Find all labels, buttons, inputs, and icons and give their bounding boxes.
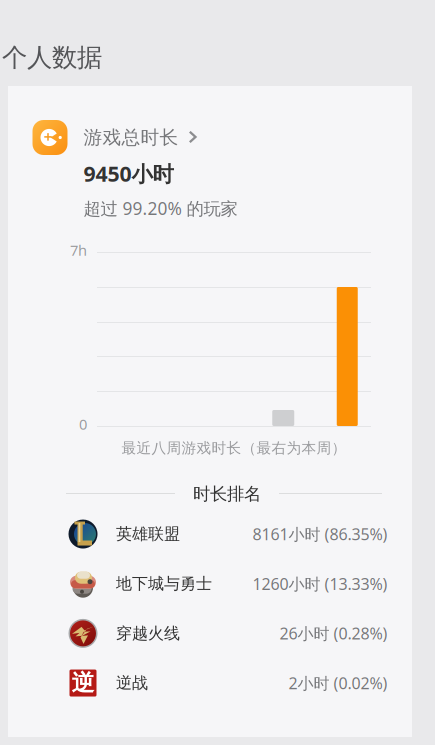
staticText: 英雄联盟 — [116, 524, 180, 544]
staticText: 游戏总时长 — [83, 126, 178, 149]
staticText: 逆 — [71, 669, 94, 697]
staticText: 穿越火线 — [116, 623, 180, 643]
staticText: 个人数据 — [2, 42, 102, 73]
staticText: 地下城与勇士 — [116, 574, 212, 594]
staticText: 9450小时 — [83, 159, 173, 188]
staticText: 2小时 (0.02%) — [288, 672, 387, 694]
staticText: 1260小时 (13.33%) — [252, 573, 387, 594]
staticText: 8161小时 (86.35%) — [252, 523, 387, 545]
staticText: 时长排名 — [193, 483, 261, 505]
button[interactable]: 英雄联盟 — [8, 509, 412, 559]
staticText: 7h — [70, 240, 87, 260]
staticText: 最近八周游戏时长（最右为本周） — [121, 439, 346, 457]
button[interactable]: 地下城与勇士 — [8, 559, 412, 609]
staticText: 26小时 (0.28%) — [279, 623, 387, 644]
staticText: 逆战 — [116, 673, 148, 693]
button[interactable]: 穿越火线 — [8, 608, 412, 658]
button[interactable]: 逆 — [8, 658, 412, 708]
staticText: 0 — [79, 414, 87, 434]
staticText: 超过 99.20% 的玩家 — [83, 197, 237, 220]
button[interactable]: 游戏总时长 — [8, 126, 412, 220]
